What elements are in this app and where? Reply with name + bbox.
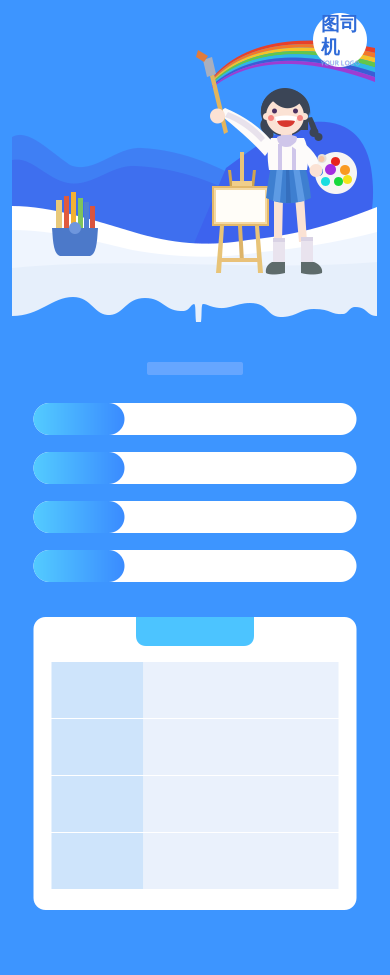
staticText: YOUR LOGO	[320, 58, 359, 67]
button[interactable]: List item	[33, 550, 356, 582]
button[interactable]: Section tab	[136, 617, 254, 646]
staticText: 图司机	[321, 13, 359, 58]
button[interactable]: List item	[33, 501, 356, 533]
button[interactable]: List item	[33, 452, 356, 484]
button[interactable]: List item	[33, 403, 356, 435]
